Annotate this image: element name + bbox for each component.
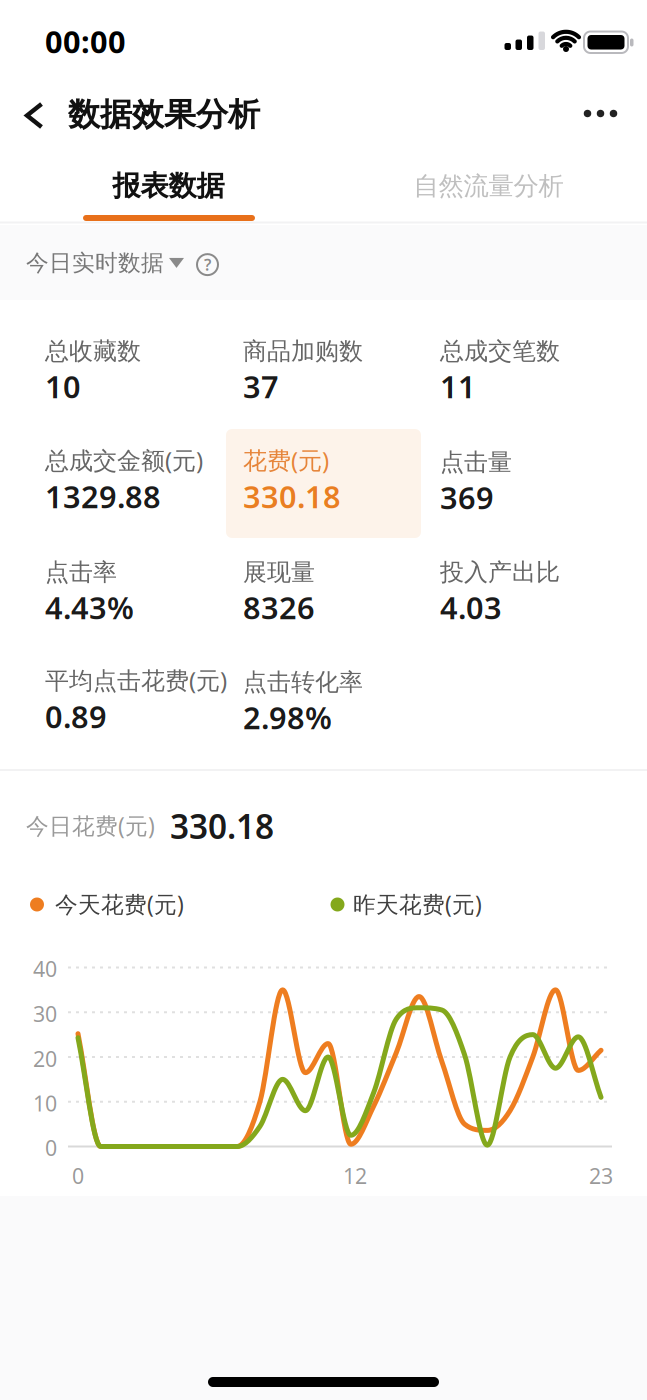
staticText: 数据效果分析: [68, 95, 260, 134]
button[interactable]: 报表数据: [7, 150, 330, 222]
staticText: 30: [33, 999, 57, 1028]
button[interactable]: Back: [11, 92, 56, 137]
staticText: 369: [440, 477, 494, 518]
button[interactable]: 点击量: [440, 447, 512, 518]
staticText: 0: [72, 1161, 84, 1190]
staticText: 0: [45, 1133, 57, 1162]
button[interactable]: 投入产出比: [440, 557, 560, 628]
staticText: 10: [33, 1089, 57, 1117]
button[interactable]: 总成交金额(元): [45, 444, 203, 517]
button[interactable]: 今日实时数据: [26, 249, 184, 277]
button[interactable]: 展现量: [243, 557, 315, 628]
staticText: 展现量: [243, 557, 315, 587]
staticText: 花费(元): [243, 444, 329, 476]
staticText: 37: [243, 366, 279, 407]
button[interactable]: 自然流量分析: [330, 150, 647, 222]
staticText: 总成交笔数: [440, 336, 560, 366]
button[interactable]: 总收藏数: [45, 336, 141, 407]
staticText: 12: [343, 1161, 367, 1190]
button[interactable]: 商品加购数: [243, 336, 363, 407]
button[interactable]: 平均点击花费(元): [45, 664, 227, 737]
staticText: 10: [45, 366, 81, 407]
staticText: 总收藏数: [45, 336, 141, 366]
staticText: 1329.88: [45, 476, 161, 517]
staticText: 20: [33, 1044, 57, 1073]
staticText: 自然流量分析: [413, 170, 563, 201]
staticText: 23: [589, 1161, 613, 1190]
button[interactable]: 点击率: [45, 557, 134, 628]
staticText: 平均点击花费(元): [45, 664, 227, 696]
staticText: 投入产出比: [440, 557, 560, 587]
staticText: 0.89: [45, 696, 107, 737]
staticText: 40: [33, 954, 57, 983]
staticText: 330.18: [243, 476, 341, 517]
staticText: 点击率: [45, 557, 117, 587]
staticText: 商品加购数: [243, 336, 363, 366]
staticText: 昨天花费(元): [353, 889, 482, 919]
button[interactable]: More: [578, 91, 623, 136]
button[interactable]: Help: [197, 254, 218, 275]
button[interactable]: 总成交笔数: [440, 336, 560, 407]
staticText: 330.18: [170, 804, 274, 848]
staticText: 报表数据: [112, 169, 224, 203]
staticText: 8326: [243, 587, 315, 628]
button[interactable]: 花费(元): [226, 429, 421, 538]
staticText: 点击转化率: [243, 667, 363, 697]
staticText: 11: [440, 366, 476, 407]
staticText: 今日实时数据: [26, 249, 164, 277]
staticText: 总成交金额(元): [45, 444, 203, 476]
staticText: 今日花费(元): [26, 810, 155, 841]
staticText: 4.03: [440, 587, 502, 628]
staticText: 点击量: [440, 447, 512, 477]
staticText: 2.98%: [243, 697, 332, 738]
staticText: ?: [204, 254, 211, 275]
button[interactable]: 点击转化率: [243, 667, 363, 738]
staticText: 今天花费(元): [55, 889, 184, 919]
staticText: 00:00: [45, 21, 126, 62]
staticText: 4.43%: [45, 587, 134, 628]
